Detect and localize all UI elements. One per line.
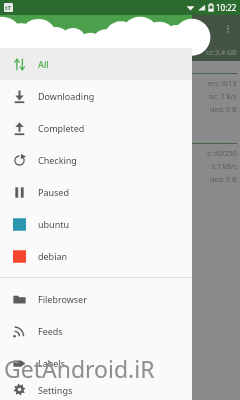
staticText: Feeds (38, 325, 63, 337)
staticText: 3.7 kB/s (211, 162, 237, 172)
staticText: nc: 7 B/s (209, 92, 237, 102)
staticText: Labels (38, 357, 66, 369)
staticText: 10:22 (216, 2, 237, 13)
staticText: GetAndroid.iR (4, 353, 155, 384)
button[interactable]: All (0, 48, 192, 80)
staticText: Checking (38, 154, 77, 166)
staticText: ce:3.4 GB (206, 48, 237, 58)
button[interactable]: Open navigation drawer (5, 22, 19, 36)
button[interactable]: Filebrowser (0, 283, 192, 315)
staticText: debian (38, 250, 68, 262)
staticText: Settings (38, 384, 73, 396)
staticText: Completed (38, 122, 85, 134)
button[interactable]: Labels (0, 347, 192, 379)
staticText: All (38, 58, 49, 70)
button[interactable]: debian (0, 240, 192, 272)
button[interactable]: Completed (0, 112, 192, 144)
staticText: Paused (38, 186, 69, 198)
staticText: ded: 0 B (210, 175, 237, 185)
button[interactable]: Feeds (0, 315, 192, 347)
button[interactable]: ubuntu (0, 208, 192, 240)
button[interactable]: More options (221, 22, 235, 36)
button[interactable]: Downloading (0, 80, 192, 112)
staticText: Filebrowser (38, 293, 87, 305)
staticText: ded: 0 B (210, 105, 237, 115)
staticText: s: 60/250 (207, 149, 237, 159)
button[interactable]: Paused (0, 176, 192, 208)
staticText: ubuntu (38, 218, 70, 230)
button[interactable]: Settings (0, 379, 192, 400)
staticText: tT (5, 4, 12, 12)
button[interactable]: Checking (0, 144, 192, 176)
staticText: Downloading (38, 90, 95, 102)
staticText: ers: 6/13 (208, 79, 237, 89)
